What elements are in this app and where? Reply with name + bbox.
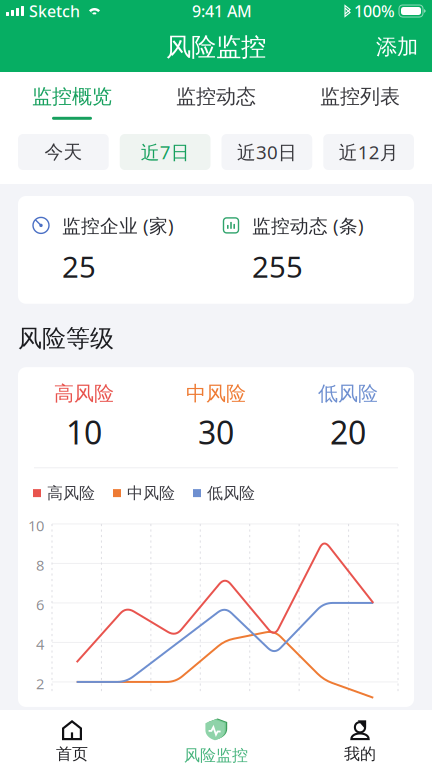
staticText: 9:41 AM (192, 0, 252, 22)
staticText: Sketch (29, 0, 80, 22)
staticText: 低风险 (318, 381, 378, 406)
staticText: 风险等级 (18, 324, 114, 353)
staticText: 近12月 (339, 140, 399, 164)
button[interactable]: 风险监控 (144, 713, 288, 765)
staticText: 255 (252, 247, 303, 286)
staticText: 监控概览 (32, 84, 112, 109)
staticText: 监控动态 (条) (252, 213, 364, 238)
staticText: 高风险 (47, 483, 95, 503)
staticText: 近7日 (141, 140, 190, 164)
button[interactable]: 近30日 (221, 134, 312, 170)
staticText: 今天 (44, 140, 82, 163)
staticText: 10 (28, 516, 44, 535)
staticText: 近30日 (237, 140, 297, 164)
button[interactable]: 今天 (18, 134, 109, 170)
staticText: 4 (36, 634, 44, 654)
staticText: 6 (36, 595, 44, 614)
staticText: 监控企业 (家) (62, 213, 174, 238)
staticText: 首页 (56, 744, 88, 764)
staticText: 10 (66, 411, 102, 453)
staticText: 25 (62, 247, 96, 286)
staticText: 风险监控 (166, 31, 266, 62)
staticText: 监控列表 (320, 84, 400, 109)
staticText: 中风险 (186, 381, 246, 406)
staticText: 高风险 (54, 381, 114, 406)
staticText: 100% (354, 0, 395, 22)
button[interactable]: 首页 (0, 714, 144, 764)
staticText: 监控动态 (176, 84, 256, 109)
staticText: 低风险 (207, 483, 255, 503)
staticText: 2 (36, 674, 44, 693)
button[interactable]: 添加 (362, 26, 432, 68)
staticText: 添加 (376, 34, 418, 60)
button[interactable]: 我的 (288, 714, 432, 764)
staticText: 我的 (344, 744, 376, 764)
staticText: 风险监控 (184, 746, 248, 765)
staticText: 30 (198, 411, 234, 453)
staticText: 中风险 (127, 483, 175, 503)
staticText: 20 (330, 411, 366, 453)
staticText: 8 (36, 555, 44, 575)
button[interactable]: 近12月 (323, 134, 414, 170)
button[interactable]: 监控动态 (144, 70, 288, 126)
button[interactable]: 监控概览 (0, 70, 144, 126)
button[interactable]: 监控列表 (288, 70, 432, 126)
button[interactable]: 近7日 (120, 134, 211, 170)
